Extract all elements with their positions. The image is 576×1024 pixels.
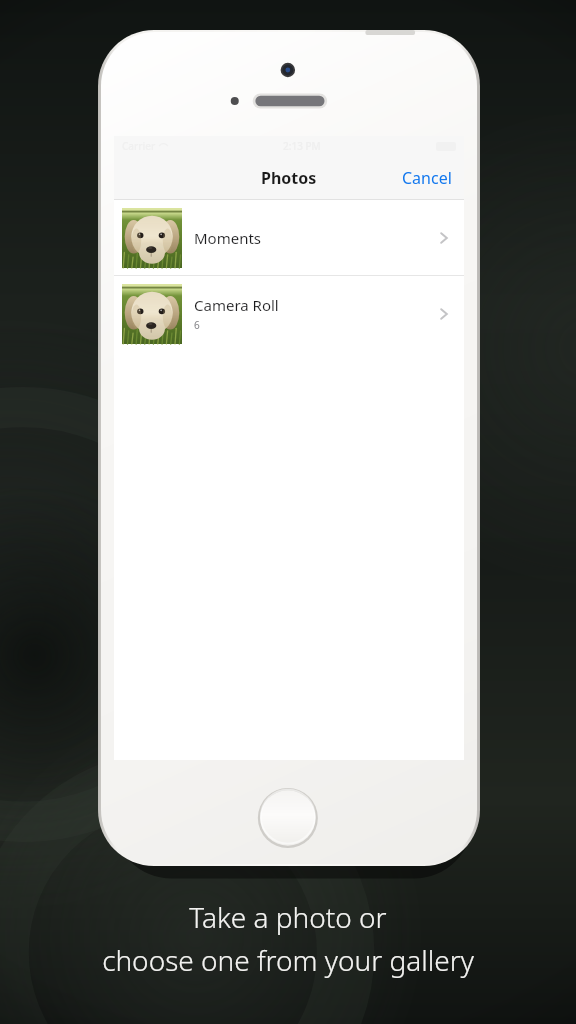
staticText: 6 [194,318,200,332]
other: Open Camera Roll [434,304,454,324]
staticText: choose one from your gallery [102,941,474,979]
staticText: Photos [261,167,317,189]
staticText: Moments [194,228,262,248]
button[interactable]: Cancel [390,157,464,199]
staticText: Cancel [402,167,452,189]
staticText: Camera Roll [194,295,279,315]
button[interactable]: Moments [114,200,464,275]
staticText: Take a photo or [189,898,387,936]
button[interactable]: Camera Roll [114,276,464,351]
other: Open Moments [434,228,454,248]
